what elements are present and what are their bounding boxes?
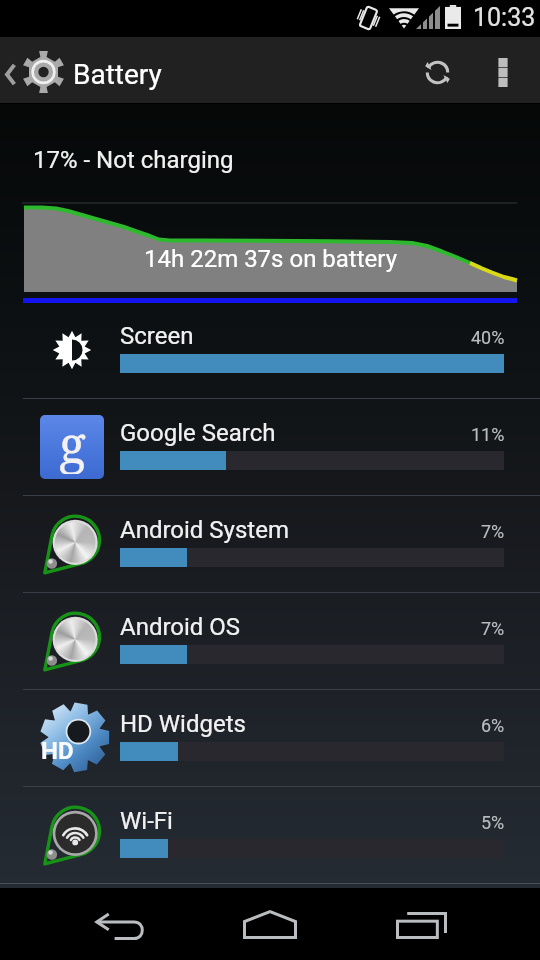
button[interactable]: Recent apps: [371, 888, 471, 960]
button[interactable]: HD: [0, 690, 540, 786]
staticText: HD Widgets: [120, 710, 246, 738]
staticText: 6%: [481, 715, 505, 736]
button[interactable]: Refresh: [400, 37, 476, 103]
staticText: 7%: [481, 521, 505, 542]
staticText: 14h 22m 37s on battery: [144, 245, 397, 273]
button[interactable]: Screen: [0, 302, 540, 398]
staticText: Android OS: [120, 613, 241, 641]
button[interactable]: Android OS: [0, 593, 540, 689]
staticText: 10:33: [473, 3, 536, 32]
button[interactable]: Back: [70, 888, 170, 960]
staticText: 40%: [471, 327, 505, 348]
staticText: Screen: [120, 322, 194, 350]
button[interactable]: g: [0, 399, 540, 495]
staticText: Android System: [120, 516, 289, 544]
staticText: Battery: [73, 58, 162, 91]
button[interactable]: Android System: [0, 496, 540, 592]
staticText: HD: [41, 737, 74, 765]
button[interactable]: Battery: [0, 37, 170, 103]
staticText: Wi-Fi: [120, 807, 173, 835]
button[interactable]: More options: [476, 37, 540, 103]
staticText: Google Search: [120, 419, 276, 447]
staticText: g: [59, 415, 86, 474]
staticText: 11%: [471, 424, 505, 445]
staticText: 7%: [481, 618, 505, 639]
staticText: 5%: [481, 812, 505, 833]
staticText: 17% - Not charging: [33, 146, 234, 174]
button[interactable]: Wi-Fi: [0, 787, 540, 883]
button[interactable]: Home: [220, 888, 320, 960]
